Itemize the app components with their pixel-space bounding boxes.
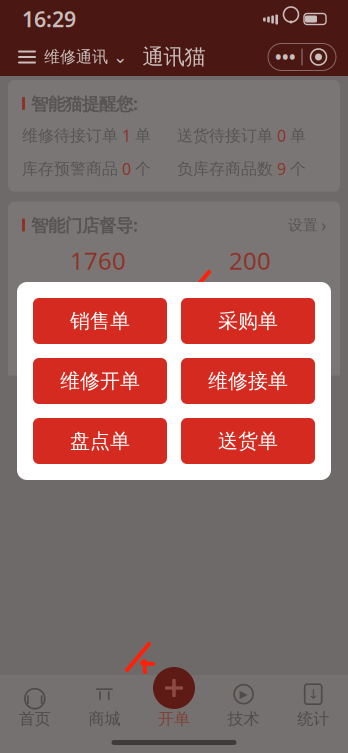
staticText: 维修通讯	[44, 47, 108, 67]
staticText: 送货单	[218, 429, 278, 453]
staticText: 4.44%	[222, 306, 277, 332]
button[interactable]: ▶	[209, 683, 278, 729]
button[interactable]: 设置	[288, 213, 326, 236]
staticText: 个	[135, 159, 151, 179]
staticText: 开单	[158, 709, 190, 729]
staticText: •••	[275, 45, 296, 68]
staticText: 采购单	[218, 309, 278, 333]
button[interactable]: 线下销售	[229, 418, 340, 475]
staticText: 统计	[297, 709, 329, 729]
staticText: 9	[277, 158, 286, 179]
staticText: 维修接单	[208, 369, 288, 393]
staticText: 业绩完成	[224, 334, 276, 351]
staticText: ▶	[240, 688, 248, 700]
button[interactable]: 采购	[119, 418, 229, 475]
staticText: 库存预警商品	[22, 159, 118, 179]
staticText: 送货待接订单	[177, 126, 273, 145]
staticText: ›	[321, 213, 326, 236]
button[interactable]: 采购单	[181, 298, 315, 344]
button[interactable]: 维修接单	[181, 358, 315, 404]
staticText: 首页	[19, 709, 51, 729]
staticText: 智能猫提醒您:	[31, 92, 138, 115]
staticText: 线下销售	[253, 455, 317, 475]
button[interactable]: 菜单	[12, 42, 42, 72]
staticText: 1	[122, 125, 131, 146]
button[interactable]: 开单	[148, 662, 200, 714]
button[interactable]: 商品管理	[8, 418, 119, 475]
staticText: 智能门店督导:	[31, 213, 138, 236]
staticText: ↓	[308, 687, 319, 702]
button[interactable]: 送货单	[181, 418, 315, 464]
button[interactable]: 更多	[268, 43, 336, 70]
staticText: 16:29	[22, 5, 76, 33]
staticText: 负库存商品数	[177, 159, 273, 179]
staticText: 单	[290, 126, 306, 145]
staticText: 盘点单	[70, 429, 130, 453]
staticText: 200	[229, 244, 271, 276]
staticText: 业绩完成	[72, 334, 124, 351]
staticText: 880%	[73, 306, 123, 332]
staticText: 设置	[288, 216, 318, 234]
staticText: 技术	[228, 709, 260, 729]
staticText: 0	[277, 125, 286, 146]
button[interactable]: 商城	[70, 683, 139, 729]
staticText: 销售单	[70, 309, 130, 333]
staticText: 商城	[88, 709, 120, 729]
staticText: 单	[135, 126, 151, 145]
staticText: 商品管理	[31, 455, 95, 475]
button[interactable]: 销售单	[33, 298, 167, 344]
button[interactable]: ↓	[278, 683, 348, 729]
staticText: 1760	[70, 244, 126, 276]
staticText: 采购	[158, 455, 190, 475]
button[interactable]: 维修开单	[33, 358, 167, 404]
staticText: 0	[122, 158, 131, 179]
staticText: ⌄	[113, 47, 128, 67]
staticText: 通讯猫	[142, 44, 205, 70]
button[interactable]: 开单	[139, 683, 209, 729]
staticText: 维修开单	[60, 369, 140, 393]
staticText: 维修待接订单	[22, 126, 118, 145]
button[interactable]: 维修通讯	[42, 42, 130, 72]
button[interactable]: 盘点单	[33, 418, 167, 464]
staticText: 个	[290, 159, 306, 179]
button[interactable]: 首页	[0, 683, 70, 729]
